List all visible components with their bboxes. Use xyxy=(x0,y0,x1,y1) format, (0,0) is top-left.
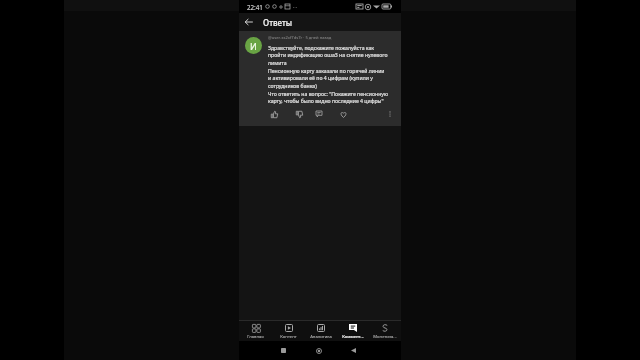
button[interactable]: Like xyxy=(268,108,280,120)
button[interactable]: Главная xyxy=(239,321,272,341)
button[interactable]: Dislike xyxy=(293,108,305,120)
staticText: Аналитика xyxy=(310,334,332,340)
staticText: @user-ss2xf7ds7r · 5 дней назад xyxy=(268,35,332,41)
button[interactable]: Avatar xyxy=(245,37,262,54)
button[interactable]: Контент xyxy=(272,321,305,341)
staticText: Что ответить на вопрос: "Покажите пенсио… xyxy=(268,90,389,105)
button[interactable]: Back xyxy=(348,345,359,356)
staticText: Главная xyxy=(247,334,264,340)
staticText: Ответы xyxy=(263,17,293,28)
button[interactable]: More options xyxy=(384,108,396,120)
button[interactable]: Home xyxy=(313,345,324,356)
button[interactable]: Back xyxy=(242,15,256,29)
staticText: Здравствуйте, подскажите пожалуйста как … xyxy=(268,44,389,67)
staticText: Монетиза... xyxy=(373,334,397,340)
button[interactable]: Монетиза... xyxy=(369,321,401,341)
button[interactable]: Reply xyxy=(313,108,325,120)
button[interactable]: Recents xyxy=(278,345,289,356)
button[interactable]: Heart xyxy=(337,108,349,120)
staticText: Пенсионную карту заказали по горячей лин… xyxy=(268,67,389,90)
button[interactable]: Коммент... xyxy=(337,321,369,341)
staticText: И xyxy=(250,40,257,52)
staticText: Коммент... xyxy=(342,334,364,340)
staticText: 22:41 xyxy=(247,3,263,11)
button[interactable]: Аналитика xyxy=(305,321,337,341)
staticText: Контент xyxy=(280,334,297,340)
